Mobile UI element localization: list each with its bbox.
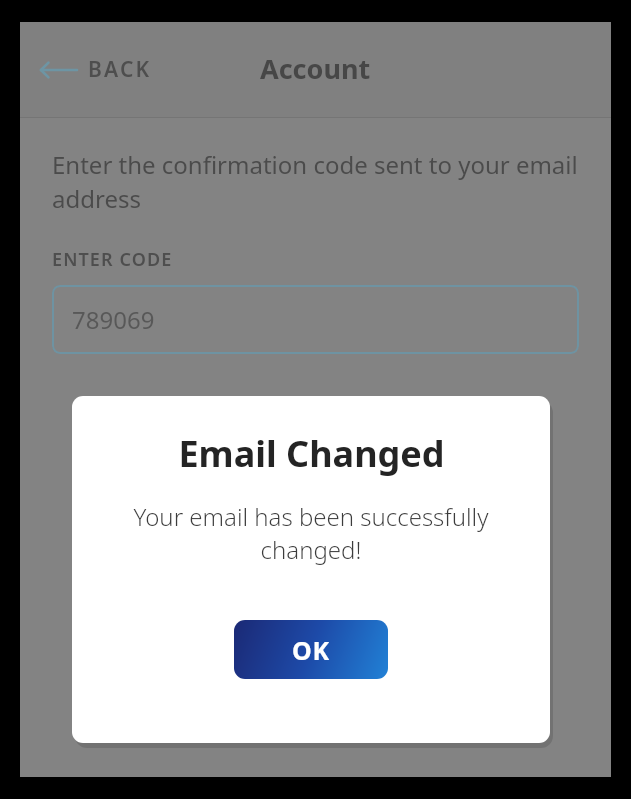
button[interactable]: OK [234, 620, 388, 679]
button[interactable]: Back [34, 47, 158, 92]
staticText: OK [292, 633, 330, 667]
staticText: Enter the confirmation code sent to your… [52, 148, 579, 215]
staticText: BACK [88, 55, 152, 84]
staticText: Account [260, 50, 371, 87]
other: Back [40, 59, 78, 81]
staticText: Your email has been successfully changed… [98, 500, 524, 566]
staticText: Email Changed [178, 429, 445, 478]
staticText: ENTER CODE [52, 247, 173, 272]
staticText: 789069 [72, 303, 155, 336]
button[interactable]: 789069 [52, 285, 579, 354]
